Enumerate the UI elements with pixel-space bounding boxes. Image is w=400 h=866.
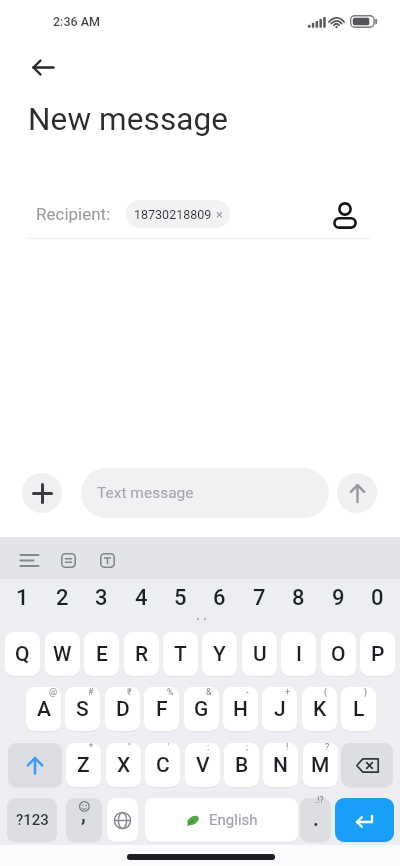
button[interactable]: 3: [84, 583, 119, 613]
staticText: #: [88, 687, 94, 698]
staticText: V: [196, 753, 210, 778]
staticText: T: [174, 642, 187, 667]
staticText: X: [117, 753, 131, 778]
button[interactable]: M: [303, 743, 338, 787]
button[interactable]: [8, 743, 62, 787]
button[interactable]: [337, 473, 377, 513]
button[interactable]: [93, 546, 121, 574]
staticText: N: [273, 753, 288, 778]
button[interactable]: 6: [202, 583, 237, 613]
staticText: ,: [81, 802, 86, 825]
staticText: (: [324, 687, 328, 698]
button[interactable]: 5: [163, 583, 198, 613]
button[interactable]: W: [45, 632, 80, 676]
staticText: .!?: [315, 795, 324, 805]
staticText: 18730218809: [134, 207, 212, 222]
staticText: C: [156, 753, 170, 778]
button[interactable]: I: [281, 632, 316, 676]
staticText: 4: [135, 585, 148, 611]
button[interactable]: English: [145, 798, 298, 842]
staticText: :: [207, 742, 210, 753]
staticText: M: [311, 753, 330, 778]
staticText: 2:36 AM: [53, 14, 101, 29]
staticText: 0: [371, 585, 384, 611]
button[interactable]: [25, 52, 61, 82]
staticText: .: [313, 807, 319, 830]
staticText: ?: [325, 742, 330, 753]
button[interactable]: ?123: [7, 798, 57, 842]
button[interactable]: G: [184, 687, 219, 731]
button[interactable]: Q: [5, 632, 40, 676]
button[interactable]: O: [321, 632, 356, 676]
staticText: Q: [15, 642, 30, 667]
staticText: ?123: [16, 811, 49, 829]
button[interactable]: 7: [242, 583, 277, 613]
button[interactable]: E: [84, 632, 119, 676]
staticText: I: [296, 642, 302, 667]
staticText: Z: [77, 753, 90, 778]
button[interactable]: B: [224, 743, 259, 787]
button[interactable]: [328, 196, 362, 232]
staticText: -: [246, 687, 249, 698]
button[interactable]: [54, 546, 82, 574]
button[interactable]: C: [145, 743, 180, 787]
button[interactable]: N: [263, 743, 298, 787]
staticText: 5: [174, 585, 187, 611]
staticText: ₹: [127, 687, 132, 698]
staticText: S: [76, 697, 89, 722]
button[interactable]: 1: [5, 583, 40, 613]
button[interactable]: 9: [321, 583, 356, 613]
staticText: O: [331, 642, 346, 667]
staticText: ×: [216, 207, 223, 222]
button[interactable]: Text message: [81, 468, 329, 518]
button[interactable]: X: [106, 743, 141, 787]
button[interactable]: A: [26, 687, 61, 731]
button[interactable]: [107, 798, 138, 842]
button[interactable]: H: [223, 687, 258, 731]
staticText: ": [128, 742, 131, 753]
button[interactable]: [12, 546, 46, 574]
button[interactable]: U: [242, 632, 277, 676]
staticText: &: [206, 687, 212, 698]
staticText: ': [168, 742, 170, 753]
button[interactable]: 0: [360, 583, 395, 613]
button[interactable]: 2: [45, 583, 80, 613]
staticText: %: [167, 687, 174, 698]
staticText: R: [135, 642, 149, 667]
button[interactable]: V: [185, 743, 220, 787]
staticText: ): [364, 687, 368, 698]
button[interactable]: [341, 743, 393, 787]
button[interactable]: P: [360, 632, 395, 676]
staticText: K: [313, 697, 327, 722]
staticText: W: [53, 642, 72, 667]
button[interactable]: ,: [66, 798, 102, 842]
button[interactable]: 4: [124, 583, 159, 613]
button[interactable]: F: [144, 687, 179, 731]
button[interactable]: .: [300, 798, 331, 842]
staticText: Y: [213, 642, 226, 667]
staticText: Text message: [97, 484, 194, 502]
staticText: 3: [95, 585, 108, 611]
button[interactable]: T: [163, 632, 198, 676]
staticText: 7: [253, 585, 266, 611]
button[interactable]: K: [302, 687, 337, 731]
staticText: @: [49, 687, 58, 698]
staticText: New message: [28, 101, 229, 138]
button[interactable]: 8: [281, 583, 316, 613]
button[interactable]: Z: [66, 743, 101, 787]
button[interactable]: Y: [202, 632, 237, 676]
button[interactable]: D: [105, 687, 140, 731]
button[interactable]: J: [262, 687, 297, 731]
button[interactable]: S: [65, 687, 100, 731]
staticText: 6: [213, 585, 226, 611]
button[interactable]: 18730218809: [126, 200, 230, 228]
staticText: 1: [16, 585, 29, 611]
staticText: !: [286, 742, 289, 753]
button[interactable]: [335, 798, 394, 842]
staticText: ;: [246, 742, 248, 753]
button[interactable]: R: [124, 632, 159, 676]
button[interactable]: [22, 473, 62, 513]
staticText: 2: [56, 585, 69, 611]
button[interactable]: L: [341, 687, 376, 731]
staticText: A: [37, 697, 51, 722]
